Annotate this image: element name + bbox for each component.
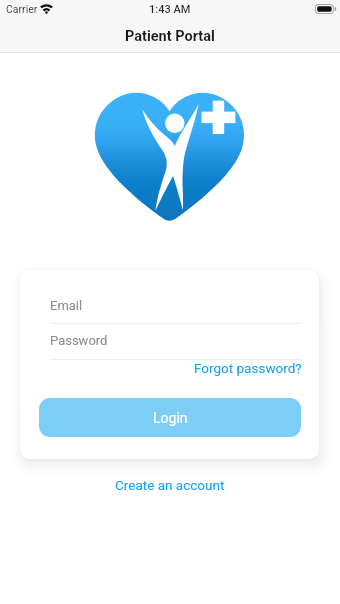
button[interactable]: Forgot password?	[192, 355, 304, 381]
button[interactable]: Password	[50, 326, 302, 354]
staticText: 1:43 AM	[149, 3, 191, 16]
staticText: Forgot password?	[194, 360, 302, 376]
button[interactable]: Login	[39, 398, 301, 437]
button[interactable]: Create an account	[105, 472, 235, 498]
staticText: Create an account	[115, 477, 225, 493]
staticText: Password	[50, 333, 108, 348]
other: Battery full	[315, 4, 336, 14]
other: Wi-Fi signal	[40, 4, 53, 12]
button[interactable]: Email	[50, 291, 302, 319]
staticText: Login	[153, 410, 188, 426]
staticText: Carrier	[6, 3, 38, 15]
staticText: Email	[50, 298, 83, 313]
staticText: Patient Portal	[125, 28, 215, 45]
